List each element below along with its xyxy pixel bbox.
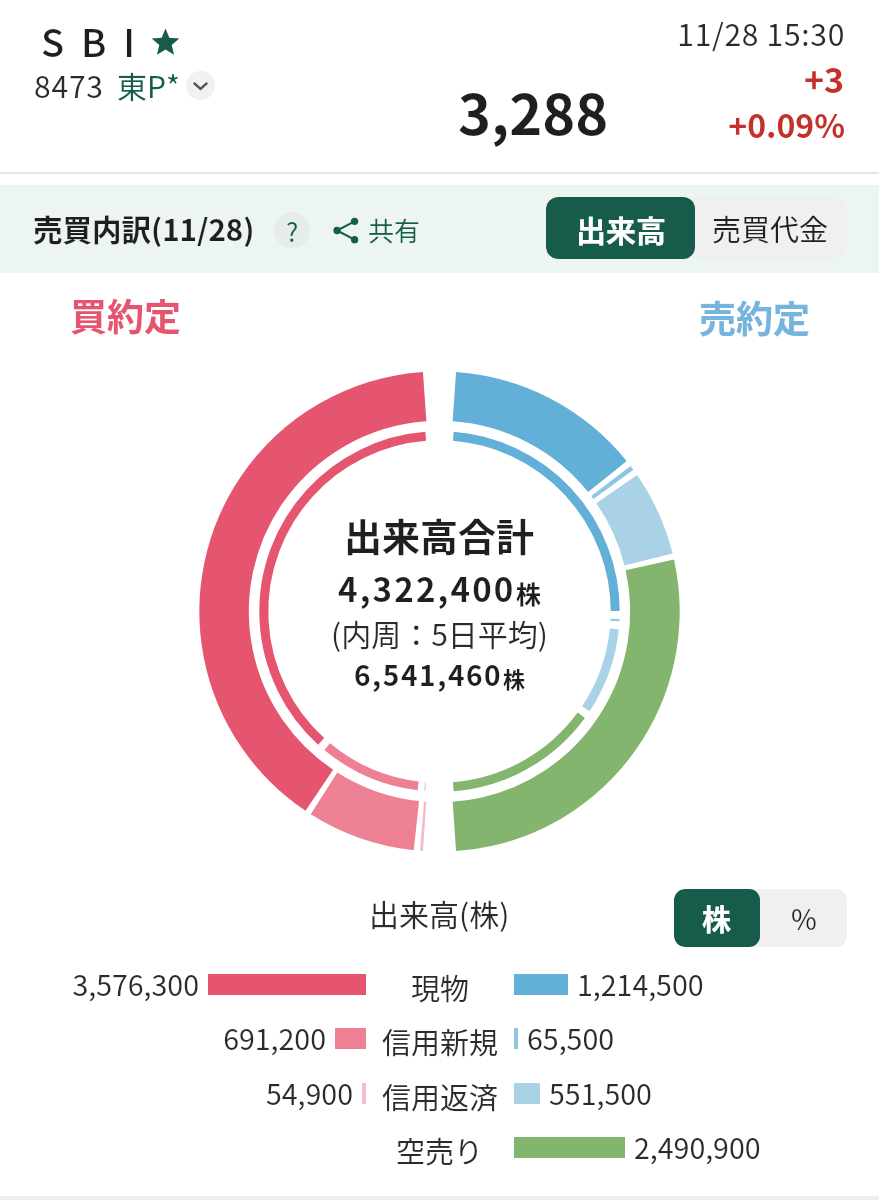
staticText: ? [286, 212, 299, 248]
staticText: 54,900 [265, 1072, 353, 1113]
staticText: 信用返済 [382, 1075, 499, 1117]
button[interactable]: 出来高 [546, 197, 695, 259]
staticText: 691,200 [223, 1017, 326, 1058]
staticText: 1,214,500 [577, 963, 704, 1004]
staticText: 売買内訳(11/28) [33, 207, 255, 250]
staticText: 信用新規 [382, 1020, 499, 1062]
staticText: 売約定 [699, 290, 810, 344]
staticText: 株 [503, 662, 526, 694]
button[interactable]: % [760, 889, 847, 947]
staticText: 東P* [117, 63, 180, 106]
button[interactable]: Favourite [151, 28, 180, 57]
staticText: % [791, 898, 817, 939]
staticText: 3,288 [458, 70, 609, 151]
staticText: 現物 [411, 966, 470, 1008]
button[interactable]: 売買代金 [695, 197, 846, 259]
staticText: 8473 [34, 63, 104, 106]
staticText: 出来高(株) [369, 891, 510, 934]
staticText: 6,541,460 [354, 654, 503, 695]
staticText: 株 [702, 897, 732, 939]
staticText: 株 [516, 575, 542, 611]
staticText: 551,500 [549, 1072, 652, 1113]
staticText: 売買代金 [712, 207, 829, 249]
staticText: 11/28 15:30 [677, 11, 845, 54]
staticText: S B I [41, 13, 140, 68]
staticText: 4,322,400 [338, 564, 516, 612]
button[interactable]: 株 [674, 889, 760, 947]
staticText: 共有 [368, 211, 421, 249]
staticText: 2,490,900 [634, 1126, 761, 1167]
staticText: +0.09% [728, 101, 845, 147]
staticText: 出来高合計 [344, 507, 535, 562]
staticText: 空売り [396, 1129, 484, 1171]
button[interactable]: Help [274, 212, 310, 248]
button[interactable]: 共有 [333, 208, 421, 252]
staticText: 出来高 [576, 207, 666, 250]
staticText: (内周：5日平均) [331, 611, 548, 654]
staticText: 買約定 [70, 288, 181, 342]
button[interactable]: Market selector [186, 71, 215, 100]
staticText: 3,576,300 [72, 963, 199, 1004]
staticText: +3 [803, 54, 844, 103]
staticText: 65,500 [527, 1017, 615, 1058]
